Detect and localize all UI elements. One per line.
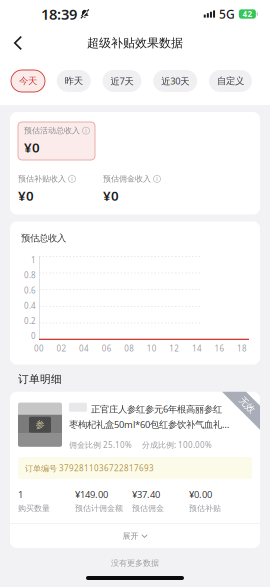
staticText: 没有更多数据 [111, 558, 159, 568]
staticText: 16 [214, 343, 224, 354]
staticText: ¥0.00 [189, 488, 212, 500]
staticText: ¥37.40 [132, 488, 160, 500]
staticText: ¥0 [103, 187, 119, 204]
staticText: 无效 [238, 399, 256, 410]
staticText: 14 [192, 343, 202, 354]
staticText: 预估佣金收入 [103, 174, 151, 184]
staticText: 近30天 [161, 75, 189, 87]
staticText: 预估补贴收入 [18, 174, 66, 184]
staticText: 0.2 [24, 315, 36, 326]
staticText: 12 [169, 343, 179, 354]
staticText: 预估计佣金额 [75, 503, 123, 513]
staticText: 0 [31, 331, 36, 341]
staticText: 今天 [19, 75, 37, 87]
staticText: 06 [102, 343, 112, 354]
staticText: 超级补贴效果数据 [87, 36, 183, 50]
staticText: 正官庄人参红参元6年根高丽参红 [91, 403, 222, 415]
staticText: 04 [79, 343, 89, 354]
staticText: 昨天 [65, 75, 83, 87]
staticText: 10 [147, 343, 157, 354]
staticText: 18:39 [41, 4, 77, 24]
button[interactable]: 近30天 [153, 70, 197, 92]
button[interactable]: 展开 [10, 524, 260, 548]
button[interactable]: 今天 [11, 70, 45, 92]
button[interactable]: 自定义 [209, 70, 252, 92]
staticText: 预估活动总收入 [24, 126, 80, 135]
staticText: 1 [18, 488, 23, 500]
staticText: 0.6 [24, 285, 36, 296]
staticText: ¥0 [24, 139, 40, 156]
staticText: 预估佣金 [132, 503, 164, 513]
staticText: 订单编号 3792811036722817693 [25, 463, 154, 473]
staticText: 近7天 [110, 75, 133, 87]
staticText: 预估补贴 [189, 503, 221, 513]
staticText: ¥0 [18, 187, 34, 204]
button[interactable]: Back [0, 28, 34, 58]
staticText: 自定义 [217, 75, 244, 87]
staticText: 预估总收入 [21, 232, 66, 244]
staticText: 08 [124, 343, 134, 354]
staticText: 展开 [122, 531, 138, 541]
staticText: 0.8 [24, 270, 36, 280]
staticText: 购买数量 [18, 503, 50, 513]
button[interactable]: 昨天 [57, 70, 91, 92]
staticText: 0.4 [24, 300, 36, 311]
staticText: 18 [237, 343, 247, 354]
staticText: 02 [57, 343, 67, 354]
staticText: 1 [31, 255, 36, 265]
staticText: 42 [242, 9, 252, 19]
staticText: 参 [35, 419, 44, 430]
staticText: 佣金比例 25.10% [69, 439, 132, 450]
staticText: 5G [219, 6, 235, 22]
staticText: 订单明细 [18, 373, 62, 386]
staticText: 枣枸杞礼盒50ml*60包红参饮补气血礼… [69, 418, 229, 430]
staticText: 分成比例: 100.00% [142, 439, 212, 450]
staticText: ¥149.00 [75, 488, 108, 500]
button[interactable]: 近7天 [102, 70, 141, 92]
staticText: 00 [34, 343, 44, 354]
